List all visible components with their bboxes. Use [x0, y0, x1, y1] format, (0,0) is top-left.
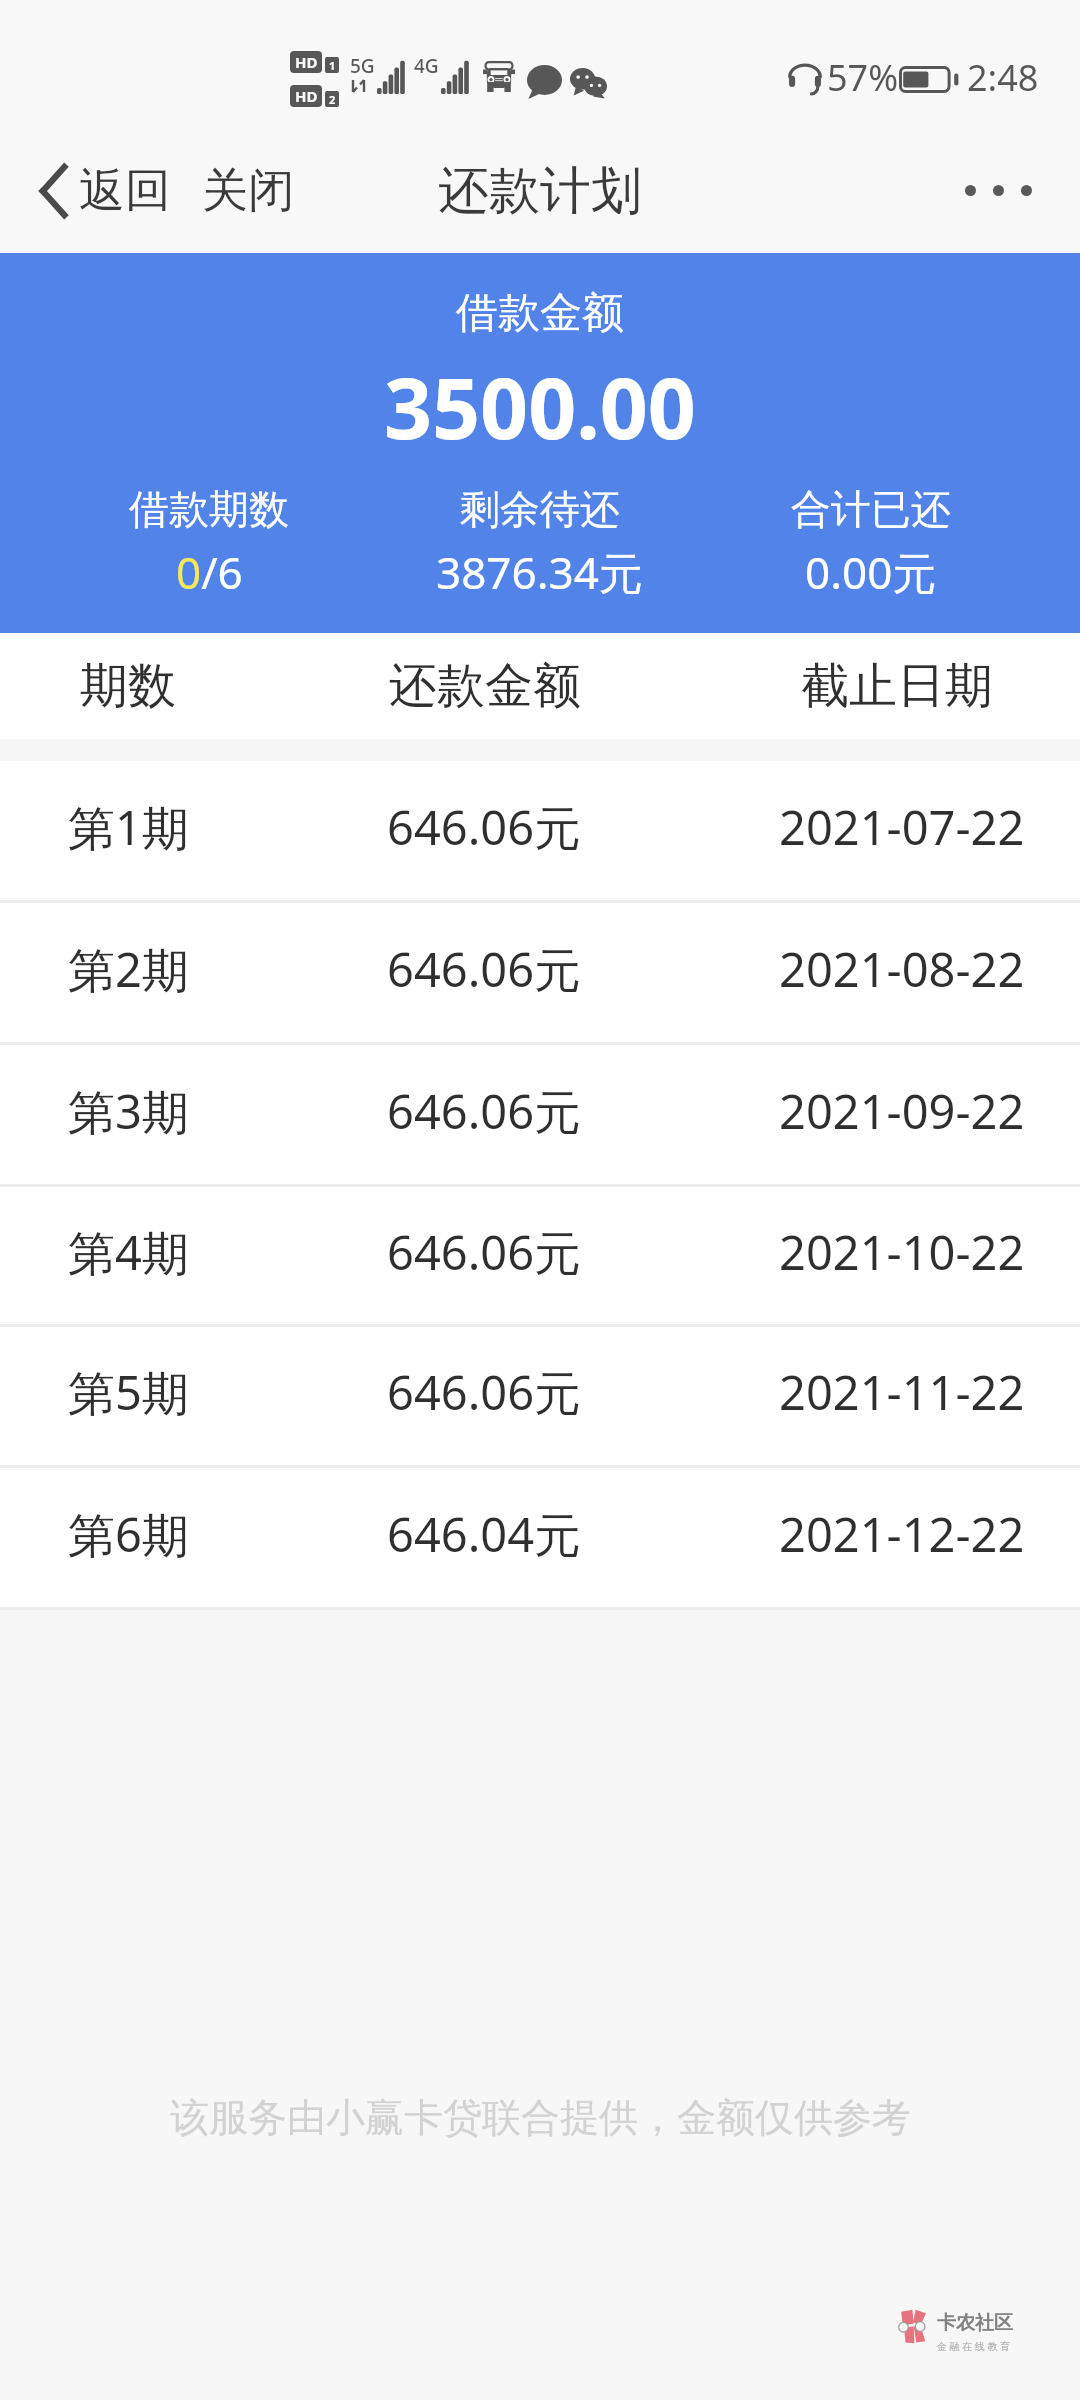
- staticText: 借款金额: [456, 287, 624, 340]
- staticText: 第6期: [68, 1502, 189, 1566]
- staticText: 截止日期: [801, 656, 993, 716]
- button[interactable]: 关闭: [190, 128, 306, 253]
- staticText: 期数: [80, 656, 176, 716]
- staticText: 2021-09-22: [779, 1079, 1025, 1143]
- staticText: 借款期数: [129, 484, 289, 534]
- staticText: 646.04元: [387, 1502, 582, 1566]
- staticText: 2021-11-22: [779, 1360, 1025, 1424]
- button[interactable]: 第4期: [0, 1187, 1080, 1324]
- staticText: 2021-07-22: [779, 795, 1025, 859]
- staticText: HD: [295, 52, 318, 72]
- staticText: HD: [295, 86, 318, 106]
- staticText: 第1期: [68, 795, 189, 859]
- staticText: 还款计划: [438, 159, 642, 223]
- staticText: 646.06元: [387, 1220, 582, 1284]
- staticText: 合计已还: [791, 484, 951, 534]
- staticText: 关闭: [202, 162, 294, 220]
- staticText: 0/6: [176, 542, 243, 602]
- staticText: 646.06元: [387, 1079, 582, 1143]
- staticText: 646.06元: [387, 1360, 582, 1424]
- staticText: 第5期: [68, 1360, 189, 1424]
- staticText: 0.00元: [805, 542, 937, 602]
- button[interactable]: 第2期: [0, 903, 1080, 1042]
- staticText: 卡农社区: [937, 2311, 1013, 2335]
- button[interactable]: 第6期: [0, 1468, 1080, 1607]
- staticText: 1: [329, 58, 336, 73]
- button[interactable]: More options: [931, 128, 1080, 253]
- staticText: 646.06元: [387, 937, 582, 1001]
- staticText: 剩余待还: [460, 484, 620, 534]
- button[interactable]: 返回: [0, 128, 185, 253]
- staticText: 2021-10-22: [779, 1220, 1025, 1284]
- staticText: 第2期: [68, 937, 189, 1001]
- staticText: 646.06元: [387, 795, 582, 859]
- staticText: 返回: [79, 162, 171, 220]
- staticText: 2:48: [967, 53, 1039, 102]
- staticText: 金 融 在 线 教 育: [937, 2339, 1010, 2353]
- staticText: 3500.00: [384, 349, 696, 463]
- staticText: 3876.34元: [436, 542, 643, 602]
- staticText: 4G: [414, 53, 439, 79]
- staticText: 第4期: [68, 1220, 189, 1284]
- staticText: 5G: [350, 53, 375, 79]
- staticText: 第3期: [68, 1079, 189, 1143]
- button[interactable]: 第5期: [0, 1327, 1080, 1465]
- staticText: 2021-12-22: [779, 1502, 1025, 1566]
- staticText: 2021-08-22: [779, 937, 1025, 1001]
- staticText: 57%: [827, 53, 899, 102]
- staticText: 该服务由小赢卡贷联合提供，金额仅供参考: [170, 2093, 911, 2142]
- staticText: 还款金额: [389, 656, 581, 716]
- staticText: 2: [329, 92, 336, 107]
- button[interactable]: 第1期: [0, 761, 1080, 900]
- button[interactable]: 第3期: [0, 1045, 1080, 1184]
